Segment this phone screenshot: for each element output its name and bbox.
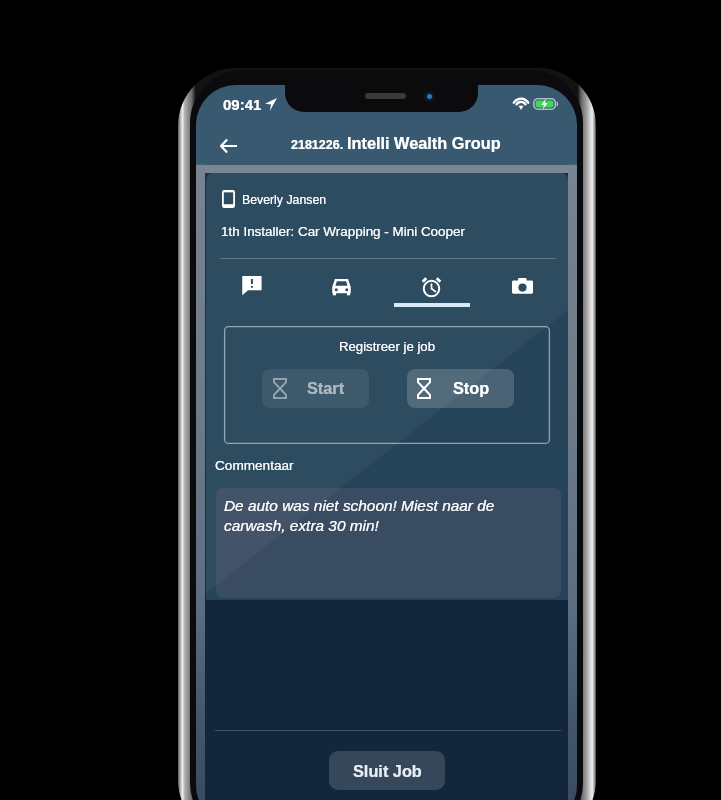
button[interactable]: Stop	[407, 369, 514, 408]
staticText: Sluit Job	[353, 762, 422, 780]
button[interactable]: Voertuig	[296, 276, 386, 307]
staticText: De auto was niet schoon! Miest naar de c…	[224, 497, 524, 534]
staticText: Start	[307, 379, 345, 397]
button[interactable]: Tijd	[386, 276, 477, 307]
staticText: 09:41	[223, 96, 262, 113]
staticText: Beverly Jansen	[242, 193, 327, 207]
button[interactable]: Fotos	[477, 276, 568, 307]
staticText: Intelli Wealth Group	[347, 134, 501, 152]
button[interactable]: Opmerkingen	[206, 276, 296, 307]
button[interactable]: Start	[262, 369, 369, 408]
staticText: 2181226.	[291, 138, 344, 152]
staticText: Registreer je job	[224, 339, 550, 354]
staticText: Commentaar	[215, 458, 294, 473]
staticText: 1th Installer: Car Wrapping - Mini Coope…	[221, 224, 465, 239]
button[interactable]: Sluit Job	[329, 751, 445, 790]
button[interactable]: Back	[210, 128, 246, 164]
staticText: Stop	[453, 379, 490, 397]
